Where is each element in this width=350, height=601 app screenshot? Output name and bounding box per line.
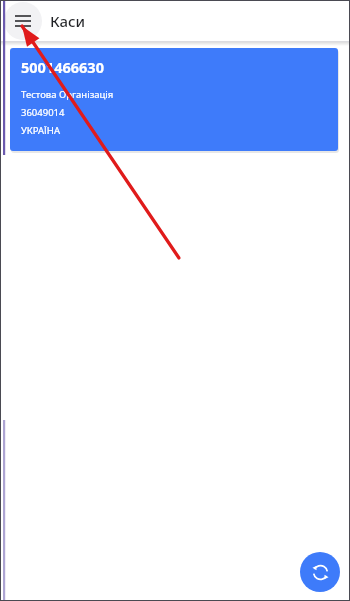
button[interactable]: Refresh [300, 552, 340, 592]
staticText: Тестова Організація [21, 88, 114, 101]
button[interactable]: 5001466630 [10, 48, 338, 151]
staticText: 36049014 [21, 106, 65, 119]
staticText: УКРАЇНА [21, 124, 60, 137]
staticText: 5001466630 [21, 57, 104, 77]
staticText: Каси [50, 11, 86, 31]
button[interactable]: Open navigation menu [8, 6, 38, 36]
